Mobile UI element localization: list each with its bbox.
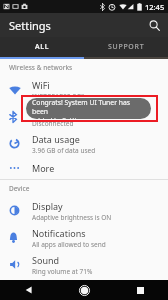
staticText: Disconnected xyxy=(32,119,74,128)
button[interactable]: Back xyxy=(0,280,56,300)
staticText: Adaptive brightness is ON xyxy=(32,213,112,222)
staticText: Data usage xyxy=(32,133,80,145)
button[interactable]: WiFi xyxy=(0,76,168,103)
staticText: More xyxy=(32,162,55,174)
staticText: Device xyxy=(9,184,30,193)
staticText: added to Settings xyxy=(32,116,89,119)
button[interactable]: Search xyxy=(144,15,164,35)
button[interactable]: Data usage xyxy=(0,130,168,157)
staticText: SUPPORT xyxy=(108,42,145,52)
staticText: Settings xyxy=(9,18,51,33)
button[interactable]: More xyxy=(0,157,168,179)
button[interactable]: Display xyxy=(0,197,168,224)
staticText: Congrats! System UI Tuner has been xyxy=(32,98,146,116)
staticText: "NETGEAR95-5G" xyxy=(32,92,84,101)
staticText: Notifications xyxy=(32,227,86,239)
staticText: Sound xyxy=(32,254,60,266)
staticText: Bluetooth xyxy=(32,106,74,118)
staticText: Wireless & networks xyxy=(9,63,73,72)
staticText: All apps allowed to send xyxy=(32,240,106,249)
staticText: WiFi xyxy=(32,79,50,91)
button[interactable]: Home xyxy=(56,280,112,300)
button[interactable]: SUPPORT xyxy=(84,37,168,57)
staticText: 3.96 GB of data used xyxy=(32,146,96,155)
staticText: Display xyxy=(32,200,63,212)
button[interactable]: Recents xyxy=(112,280,168,300)
button[interactable]: Sound xyxy=(0,251,168,278)
button[interactable]: Notifications xyxy=(0,224,168,251)
staticText: ALL xyxy=(35,42,50,52)
button[interactable]: ALL xyxy=(0,37,84,57)
staticText: 12:45 xyxy=(145,2,165,12)
staticText: Ring volume at 71% xyxy=(32,267,93,276)
button[interactable]: Bluetooth xyxy=(0,103,168,130)
